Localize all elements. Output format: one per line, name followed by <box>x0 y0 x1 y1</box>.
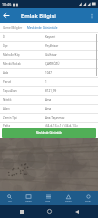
staticText: 1 <box>45 80 94 84</box>
staticText: Pafta <box>3 124 45 128</box>
staticText: Arsa <box>45 98 94 102</box>
button[interactable]: İl <box>0 33 98 41</box>
staticText: Ada <box>3 71 45 75</box>
staticText: Mahalle/Köy <box>3 53 45 57</box>
staticText: Zemin Tipi <box>3 116 45 120</box>
button[interactable]: Mevkiinde Görüntüle <box>26 23 59 32</box>
button[interactable]: Genel Bilgiler <box>2 23 24 32</box>
button[interactable]: Liste <box>38 191 58 205</box>
button[interactable]: Zemin Tipi <box>0 114 98 122</box>
button[interactable]: Back <box>70 205 83 218</box>
button[interactable]: Ada <box>0 69 98 77</box>
staticText: İlçe <box>3 44 45 48</box>
button[interactable]: İlçe <box>0 42 98 50</box>
staticText: İl <box>3 35 45 39</box>
staticText: Profil <box>85 200 91 203</box>
button[interactable]: Favori <box>58 191 78 205</box>
staticText: Yeşilhisar <box>45 44 94 48</box>
staticText: Nitelik <box>3 98 45 102</box>
button[interactable]: Pafta <box>0 123 98 128</box>
staticText: Gülhisar <box>45 53 94 57</box>
button[interactable]: Back <box>0 8 13 23</box>
staticText: Favori <box>65 200 72 203</box>
button[interactable]: Nitelik <box>0 96 98 104</box>
staticText: Ara <box>8 200 12 203</box>
staticText: Emlak Bilgisi <box>21 12 56 20</box>
staticText: 10:46 <box>2 2 12 7</box>
staticText: Alanı <box>3 107 45 111</box>
staticText: i34-d-13-c-1 / i34-d-13-c <box>45 124 94 128</box>
button[interactable]: Ara <box>0 191 19 205</box>
button[interactable]: Alanı <box>0 105 98 113</box>
button[interactable]: Profil <box>78 191 98 205</box>
staticText: 1047 <box>45 71 94 75</box>
button[interactable]: Tapu Alanı <box>0 87 98 95</box>
staticText: Parsel <box>3 80 45 84</box>
button[interactable]: Parsel <box>0 78 98 86</box>
button[interactable]: More options <box>85 8 98 23</box>
staticText: Mevkiinde Görüntüle <box>27 26 58 30</box>
staticText: 8121,99 <box>45 89 94 93</box>
staticText: Liste <box>45 200 51 203</box>
button[interactable]: Home <box>43 205 56 218</box>
button[interactable]: Mahalle/Köy <box>0 51 98 59</box>
staticText: Mevkiinde Görüntüle <box>36 131 63 135</box>
button[interactable]: Harita <box>19 191 38 205</box>
button[interactable]: Recent apps <box>15 205 28 218</box>
staticText: Ana Taşınmaz <box>45 116 94 120</box>
staticText: Mevkii/Sokak <box>3 62 45 66</box>
staticText: ÇAYIRÖZÜ <box>45 62 94 66</box>
staticText: Kayseri <box>45 35 94 39</box>
staticText: Tapu Alanı <box>3 89 45 93</box>
staticText: Arsa <box>45 107 94 111</box>
button[interactable]: Mevkiinde Görüntüle <box>2 128 96 138</box>
button[interactable]: Mevkii/Sokak <box>0 60 98 68</box>
staticText: Genel Bilgiler <box>3 26 23 30</box>
staticText: Harita <box>25 200 32 203</box>
